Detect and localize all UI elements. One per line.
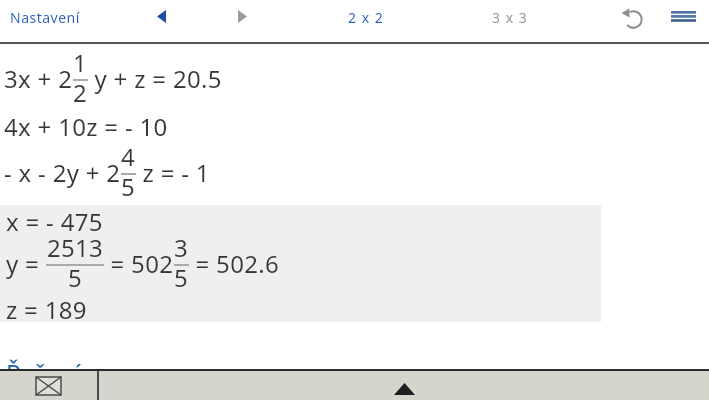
- staticText: z = - 1: [136, 156, 210, 189]
- staticText: - x - 2y + 2: [4, 156, 121, 189]
- staticText: 4: [121, 140, 136, 173]
- staticText: Řešení:: [6, 356, 87, 389]
- button[interactable]: 2 x 2: [348, 8, 384, 27]
- staticText: 2513: [47, 231, 104, 264]
- staticText: 5: [68, 261, 83, 294]
- staticText: = 502: [104, 247, 174, 280]
- staticText: 1: [73, 46, 88, 79]
- staticText: x = - 475: [6, 205, 103, 238]
- button[interactable]: [671, 11, 696, 22]
- staticText: y =: [6, 247, 46, 280]
- button[interactable]: Nastavení: [10, 8, 80, 27]
- button[interactable]: [157, 10, 166, 23]
- button[interactable]: 3 x 3: [492, 8, 528, 27]
- staticText: 4x + 10z = - 10: [4, 110, 168, 143]
- staticText: y + z = 20.5: [88, 62, 222, 95]
- button[interactable]: [99, 371, 709, 400]
- button[interactable]: [238, 10, 247, 23]
- button[interactable]: [620, 8, 644, 30]
- button[interactable]: [0, 371, 97, 400]
- staticText: z = 189: [6, 293, 87, 326]
- staticText: 3: [174, 231, 189, 264]
- staticText: 5: [121, 170, 136, 203]
- staticText: = 502.6: [189, 247, 279, 280]
- staticText: 5: [174, 261, 189, 294]
- staticText: 2: [73, 76, 88, 109]
- staticText: 3x + 2: [4, 62, 73, 95]
